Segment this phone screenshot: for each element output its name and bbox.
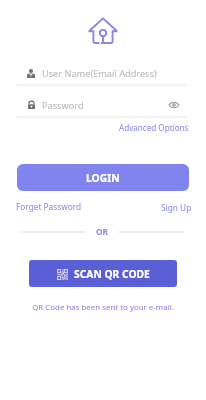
button[interactable]: SCAN QR CODE	[29, 260, 177, 287]
staticText: SCAN QR CODE	[74, 267, 150, 281]
button[interactable]: User Name(Email Address)	[17, 62, 189, 85]
staticText: User Name(Email Address)	[42, 67, 157, 80]
staticText: Sign Up	[161, 202, 192, 213]
button[interactable]: Forget Password	[16, 201, 82, 214]
staticText: Advanced Options	[119, 122, 189, 133]
button[interactable]: Show password	[165, 96, 183, 114]
button[interactable]: LOGIN	[17, 164, 189, 191]
staticText: QR Code has been sent to your e-mail.	[32, 302, 174, 313]
button[interactable]: Sign Up	[152, 201, 192, 214]
staticText: LOGIN	[86, 171, 120, 185]
staticText: Password	[42, 99, 84, 112]
button[interactable]: Advanced Options	[110, 121, 189, 134]
staticText: OR	[96, 226, 109, 237]
button[interactable]: Password	[17, 94, 189, 117]
staticText: Forget Password	[16, 201, 82, 212]
